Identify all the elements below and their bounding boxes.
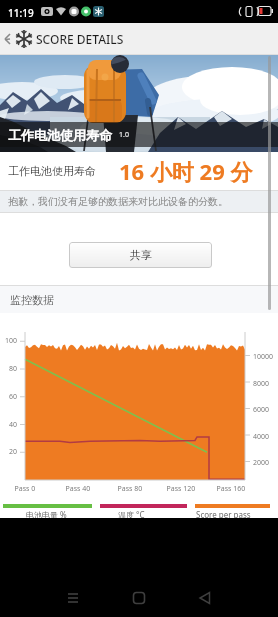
button[interactable] xyxy=(40,586,106,610)
staticText: 共享 xyxy=(130,248,152,262)
staticText: 工作电池使用寿命 xyxy=(8,127,112,143)
staticText: 16 小时 29 分 xyxy=(119,156,253,186)
button[interactable] xyxy=(106,586,172,610)
staticText: 温度 °C xyxy=(118,509,145,520)
staticText: 电池电量 % xyxy=(26,509,67,520)
staticText: 11:19 xyxy=(8,6,34,20)
staticText: Score per pass xyxy=(196,509,251,520)
button[interactable]: SCORE DETAILS xyxy=(0,23,124,55)
staticText: 工作电池使用寿命 xyxy=(8,164,96,178)
staticText: SCORE DETAILS xyxy=(36,31,124,47)
button[interactable] xyxy=(172,586,238,610)
button[interactable]: 共享 xyxy=(69,242,212,268)
staticText: 抱歉，我们没有足够的数据来对比此设备的分数。 xyxy=(8,195,228,208)
staticText: 监控数据 xyxy=(10,293,54,307)
staticText: 1.0 xyxy=(119,130,129,140)
